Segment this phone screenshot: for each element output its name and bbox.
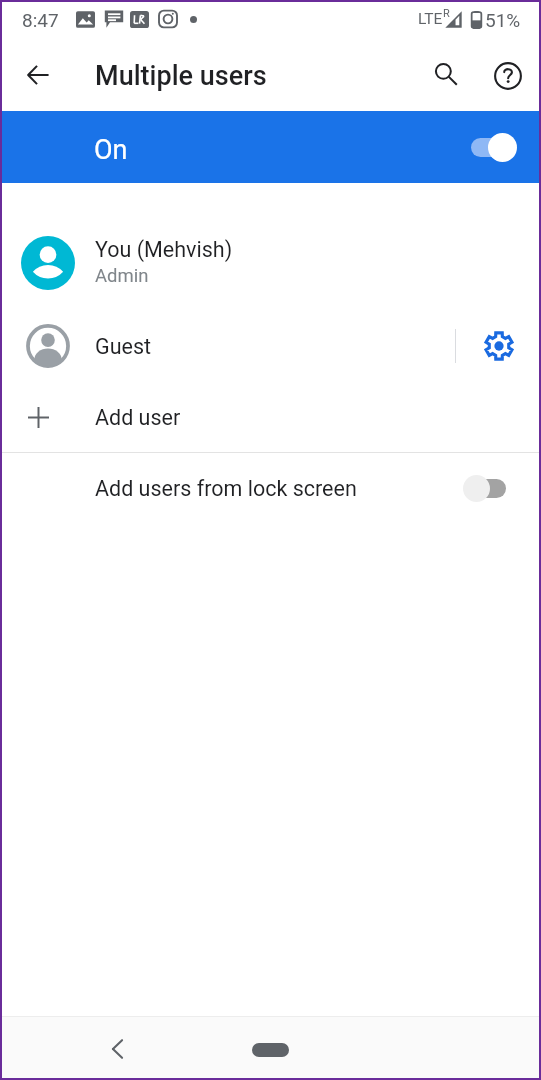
staticText: You (Mehvish) (95, 237, 233, 262)
button[interactable]: Navigate up (10, 47, 66, 103)
staticText: Admin (95, 265, 149, 287)
button[interactable]: Back (102, 1034, 132, 1064)
staticText: 51% (485, 9, 521, 31)
staticText: R (443, 7, 450, 20)
button[interactable]: Guest settings (456, 310, 541, 382)
staticText: 8:47 (22, 9, 59, 31)
button[interactable]: Home (252, 1043, 289, 1057)
button[interactable]: Guest (0, 310, 455, 382)
button[interactable]: Add users from lock screen (0, 453, 541, 523)
button[interactable]: On (0, 111, 541, 183)
button[interactable]: Add user (0, 382, 541, 452)
staticText: Multiple users (95, 60, 267, 92)
button[interactable]: Search (418, 46, 474, 102)
button[interactable]: Help (480, 48, 536, 104)
staticText: On (94, 134, 128, 166)
staticText: Add users from lock screen (95, 476, 357, 501)
staticText: Add user (95, 405, 181, 430)
staticText: Guest (95, 334, 152, 359)
button[interactable]: You (Mehvish) (0, 183, 541, 310)
staticText: LTE (418, 10, 443, 28)
